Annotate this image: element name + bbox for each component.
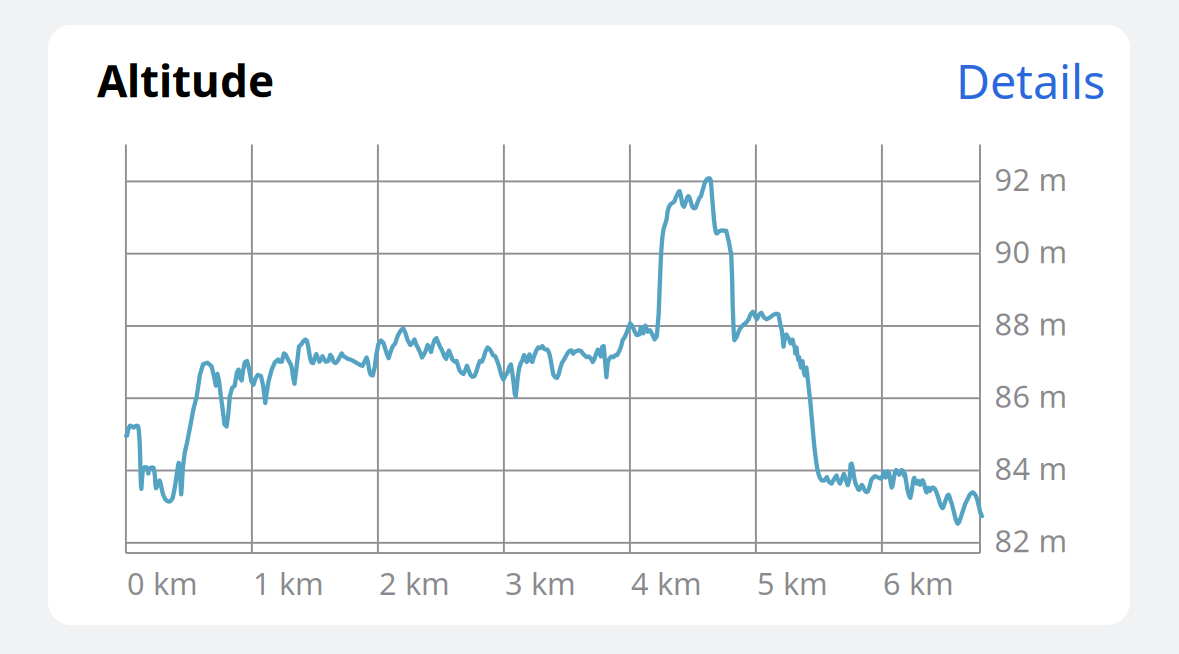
staticText: 6 km [883, 563, 954, 603]
staticText: 88 m [994, 303, 1067, 344]
staticText: 90 m [994, 231, 1067, 272]
button[interactable]: Details [950, 42, 1111, 120]
staticText: 82 m [994, 520, 1067, 561]
staticText: Altitude [97, 51, 274, 109]
staticText: 86 m [994, 375, 1067, 416]
staticText: Details [956, 50, 1105, 112]
staticText: 2 km [379, 563, 450, 603]
staticText: 0 km [127, 563, 198, 603]
staticText: 92 m [994, 159, 1067, 199]
staticText: 5 km [757, 563, 828, 603]
staticText: 84 m [994, 448, 1067, 488]
staticText: 3 km [505, 563, 576, 603]
staticText: 4 km [631, 563, 702, 603]
staticText: 1 km [253, 563, 324, 603]
